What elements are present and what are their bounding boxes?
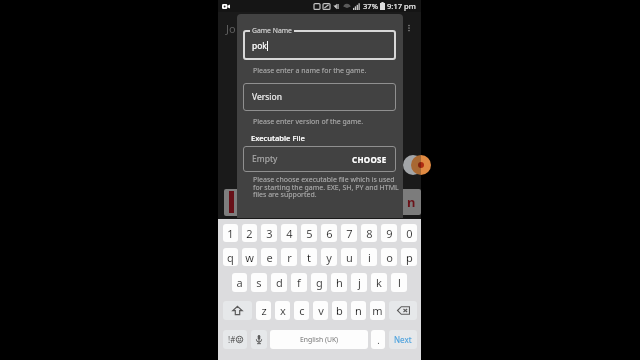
button[interactable]: h: [331, 273, 347, 292]
staticText: u: [346, 250, 353, 265]
staticText: 2: [246, 226, 253, 241]
button[interactable]: Game: [224, 189, 244, 216]
staticText: d: [276, 275, 283, 290]
button[interactable]: Symbols: [223, 330, 247, 349]
staticText: 1: [227, 226, 234, 241]
staticText: q: [227, 250, 234, 265]
button[interactable]: pok: [243, 30, 396, 60]
staticText: Version: [252, 91, 282, 103]
staticText: pok: [252, 40, 267, 51]
staticText: Executable File: [251, 133, 305, 143]
button[interactable]: m: [370, 301, 385, 320]
button[interactable]: p: [401, 248, 417, 266]
button[interactable]: k: [371, 273, 387, 292]
button[interactable]: More options: [401, 20, 417, 36]
staticText: Empty: [252, 153, 278, 165]
staticText: r: [287, 250, 292, 265]
button[interactable]: c: [294, 301, 309, 320]
button[interactable]: n: [351, 301, 366, 320]
staticText: l: [398, 275, 401, 290]
button[interactable]: r: [281, 248, 297, 266]
button[interactable]: a: [232, 273, 247, 292]
button[interactable]: 5: [301, 224, 317, 242]
button[interactable]: 7: [341, 224, 357, 242]
staticText: m: [372, 303, 383, 318]
staticText: f: [297, 275, 301, 290]
staticText: 3: [266, 226, 273, 241]
staticText: z: [261, 303, 267, 318]
button[interactable]: x: [275, 301, 290, 320]
staticText: t: [307, 250, 311, 265]
staticText: 0: [406, 226, 413, 241]
button[interactable]: 9: [381, 224, 397, 242]
staticText: k: [376, 275, 382, 290]
button[interactable]: d: [271, 273, 287, 292]
staticText: Please choose executable file which is u…: [253, 175, 400, 199]
button[interactable]: 2: [242, 224, 257, 242]
button[interactable]: Next: [389, 330, 417, 349]
button[interactable]: o: [381, 248, 397, 266]
button[interactable]: Version: [243, 83, 396, 111]
button[interactable]: Empty: [243, 146, 396, 172]
staticText: Please enter a name for the game.: [253, 66, 367, 76]
button[interactable]: u: [341, 248, 357, 266]
button[interactable]: l: [391, 273, 407, 292]
button[interactable]: 3: [261, 224, 277, 242]
staticText: a: [236, 275, 243, 290]
staticText: v: [318, 303, 324, 318]
staticText: w: [245, 250, 254, 265]
staticText: English (UK): [300, 335, 339, 344]
staticText: 8: [366, 226, 373, 241]
button[interactable]: g: [311, 273, 327, 292]
staticText: 7: [346, 226, 353, 241]
button[interactable]: y: [321, 248, 337, 266]
button[interactable]: Space: [270, 330, 368, 349]
button[interactable]: Voice input: [251, 330, 267, 349]
staticText: 37%: [363, 1, 378, 11]
staticText: 5: [306, 226, 313, 241]
button[interactable]: 1: [223, 224, 238, 242]
staticText: h: [336, 275, 343, 290]
staticText: p: [406, 250, 413, 265]
staticText: o: [386, 250, 393, 265]
button[interactable]: Shift: [223, 301, 252, 320]
staticText: b: [336, 303, 343, 318]
staticText: Jo: [226, 21, 236, 36]
staticText: !#: [228, 334, 236, 345]
button[interactable]: q: [223, 248, 238, 266]
button[interactable]: e: [261, 248, 277, 266]
staticText: x: [280, 303, 286, 318]
staticText: n: [407, 193, 416, 211]
button[interactable]: 8: [361, 224, 377, 242]
staticText: c: [299, 303, 305, 318]
staticText: i: [368, 250, 371, 265]
staticText: Next: [394, 334, 412, 345]
staticText: 6: [326, 226, 333, 241]
button[interactable]: j: [351, 273, 367, 292]
button[interactable]: v: [313, 301, 328, 320]
button[interactable]: Game: [401, 189, 421, 215]
button[interactable]: i: [361, 248, 377, 266]
staticText: n: [355, 303, 362, 318]
staticText: e: [266, 250, 273, 265]
button[interactable]: t: [301, 248, 317, 266]
staticText: g: [316, 275, 323, 290]
button[interactable]: 0: [401, 224, 417, 242]
button[interactable]: 6: [321, 224, 337, 242]
staticText: Game Name: [252, 26, 292, 35]
button[interactable]: 4: [281, 224, 297, 242]
button[interactable]: s: [251, 273, 267, 292]
staticText: .: [377, 334, 380, 346]
button[interactable]: w: [242, 248, 257, 266]
button[interactable]: Backspace: [389, 301, 417, 320]
button[interactable]: b: [332, 301, 347, 320]
staticText: 9:17 pm: [387, 1, 416, 11]
staticText: y: [326, 250, 332, 265]
button[interactable]: f: [291, 273, 307, 292]
button[interactable]: z: [256, 301, 271, 320]
staticText: j: [358, 275, 361, 290]
staticText: 4: [286, 226, 293, 241]
staticText: CHOOSE: [352, 154, 387, 165]
staticText: Please enter version of the game.: [253, 117, 364, 127]
button[interactable]: .: [371, 330, 385, 349]
